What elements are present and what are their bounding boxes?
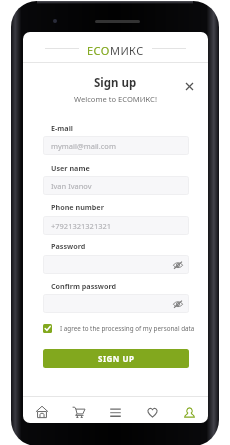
staticText: МИКС [110,43,144,58]
staticText: E-mail [51,123,73,133]
button[interactable] [43,255,189,274]
staticText: +7921321321321 [51,221,112,231]
staticText: Ivan Ivanov [51,181,92,191]
button[interactable] [43,294,189,313]
staticText: User name [51,163,90,173]
staticText: SIGN UP [98,353,135,364]
button[interactable]: Favorites [134,401,171,423]
button[interactable]: Close [182,79,196,93]
button[interactable]: Cart [60,401,97,423]
button[interactable]: Menu [97,401,134,423]
button[interactable]: Ivan Ivanov [43,176,189,195]
staticText: mymail@mail.com [51,141,116,151]
button[interactable]: +7921321321321 [43,216,189,235]
staticText: Confirm password [51,281,117,291]
staticText: Phone number [51,202,104,212]
staticText: Sign up [94,75,137,91]
staticText: Welcome to ECOМИКС! [23,94,208,104]
button[interactable]: Home [23,401,60,423]
button[interactable]: Account [171,401,208,423]
button[interactable]: SIGN UP [43,349,189,368]
staticText: I agree to the processing of my personal… [60,324,195,333]
button[interactable]: I agree to the processing of my personal… [43,322,195,335]
staticText: Password [51,241,86,251]
staticText: ECO [87,43,110,58]
button[interactable]: mymail@mail.com [43,136,189,155]
